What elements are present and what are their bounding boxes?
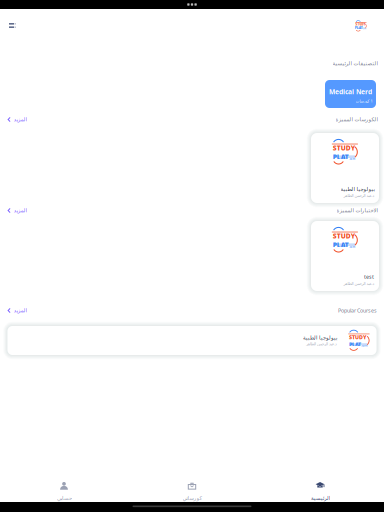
staticText: المزيد	[13, 116, 26, 123]
staticText: كورساتي	[182, 495, 202, 501]
staticText: STUDY	[349, 334, 367, 341]
staticText: 1 كورسات	[355, 98, 372, 103]
staticText: PLAT	[355, 26, 363, 30]
staticText: Popular Courses	[338, 307, 377, 314]
staticText: المزيد	[13, 307, 26, 314]
staticText: بيولوجيا الطبية	[302, 335, 336, 341]
staticText: PLAT	[349, 341, 361, 348]
staticText: د.عبد الرحمن الطاهر	[343, 193, 374, 198]
staticText: .com	[363, 28, 366, 29]
staticText: التصنيفات الرئيسية	[332, 60, 377, 67]
button[interactable]: حسابي	[0, 470, 128, 502]
button[interactable]: المزيد	[0, 115, 29, 124]
staticText: PLAT	[333, 152, 349, 161]
staticText: Medical Nerd	[329, 87, 372, 96]
staticText: STUDY	[333, 232, 355, 240]
staticText: STUDY	[333, 144, 355, 152]
button[interactable]: Study Plat	[345, 11, 384, 36]
staticText: .com	[349, 245, 355, 249]
staticText: المزيد	[13, 207, 26, 214]
button[interactable]: المزيد	[0, 306, 29, 315]
button[interactable]: Menu	[0, 9, 26, 38]
staticText: .com	[349, 157, 355, 161]
staticText: الاختبارات المميزة	[336, 207, 377, 214]
button[interactable]: Medical Nerd	[325, 80, 376, 108]
button[interactable]: بيولوجيا الطبية	[7, 326, 376, 355]
button[interactable]: المزيد	[0, 206, 29, 215]
staticText: PLAT	[333, 240, 349, 249]
button[interactable]: STUDY	[311, 133, 379, 203]
staticText: الرئيسية	[310, 495, 329, 501]
button[interactable]: الرئيسية	[256, 470, 384, 502]
staticText: الكورسات المميزة	[335, 116, 377, 123]
button[interactable]: كورساتي	[128, 470, 256, 502]
staticText: test	[364, 273, 374, 280]
staticText: حسابي	[56, 495, 71, 501]
staticText: د.عبد الرحمن الطاهر	[305, 341, 336, 346]
staticText: .com	[361, 344, 367, 347]
button[interactable]: STUDY	[311, 221, 379, 291]
staticText: STUDY	[355, 23, 365, 26]
staticText: بيولوجيا الطبية	[340, 186, 374, 192]
staticText: د.عبد الرحمن الطاهر	[343, 281, 374, 286]
